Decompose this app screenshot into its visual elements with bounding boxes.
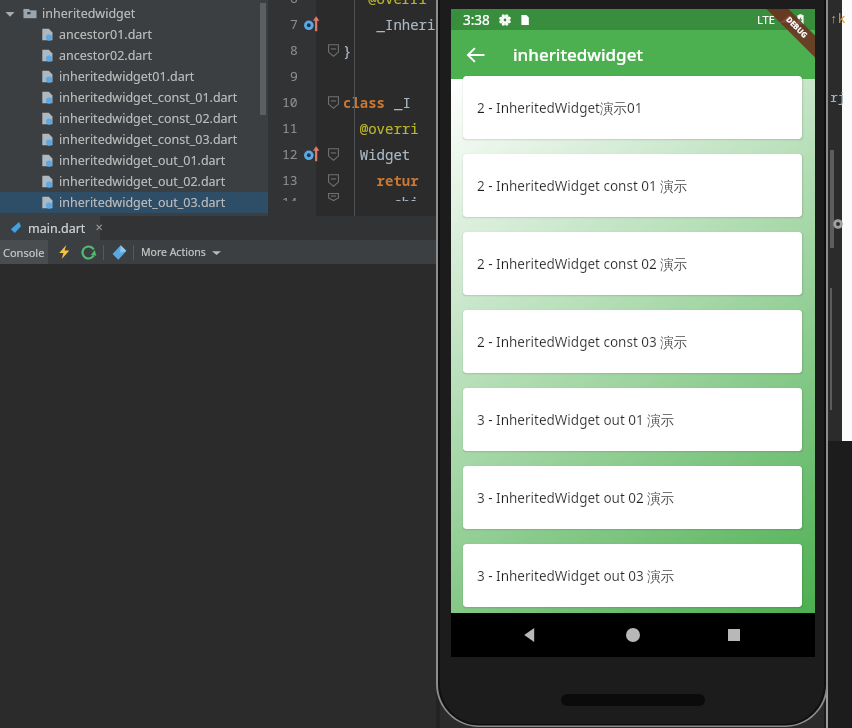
button[interactable]: 3 - InheritedWidget out 03 演示 xyxy=(463,544,802,607)
staticText: 2 - InheritedWidget演示01 xyxy=(477,99,643,117)
staticText: 6 xyxy=(290,0,298,7)
staticText: inheritedwidget_const_01.dart xyxy=(59,89,238,106)
button[interactable]: inheritedwidget xyxy=(0,3,268,24)
staticText: 2 - InheritedWidget const 02 演示 xyxy=(477,255,688,273)
staticText: 14 xyxy=(282,193,298,201)
button[interactable]: inheritedwidget_out_03.dart xyxy=(0,192,268,213)
button[interactable]: Back xyxy=(508,613,552,657)
button[interactable]: 2 - InheritedWidget演示01 xyxy=(463,76,802,139)
staticText: @overri xyxy=(343,0,427,8)
staticText: 3 - InheritedWidget out 03 演示 xyxy=(477,567,675,585)
staticText: ancestor02.dart xyxy=(59,47,153,64)
staticText: retur xyxy=(343,171,419,190)
button[interactable]: 3 - InheritedWidget out 02 演示 xyxy=(463,466,802,529)
staticText: _Inheri xyxy=(343,15,436,34)
staticText: @overri xyxy=(343,119,419,138)
staticText: 12 xyxy=(282,145,298,163)
button[interactable]: inheritedwidget_const_01.dart xyxy=(0,87,268,108)
staticText: inheritedwidget xyxy=(513,43,643,66)
staticText: 9 xyxy=(290,67,298,85)
staticText: 11 xyxy=(282,119,298,137)
button[interactable]: Console xyxy=(0,240,48,264)
button[interactable]: inheritedwidget_const_02.dart xyxy=(0,108,268,129)
staticText: inheritedwidget_out_03.dart xyxy=(59,194,226,211)
button[interactable]: inheritedwidget_const_03.dart xyxy=(0,129,268,150)
staticText: 2 - InheritedWidget const 01 演示 xyxy=(477,177,688,195)
staticText: chi xyxy=(343,193,419,201)
button[interactable]: ancestor02.dart xyxy=(0,45,268,66)
staticText: _I xyxy=(394,93,411,112)
button[interactable]: 2 - InheritedWidget const 01 演示 xyxy=(463,154,802,217)
button[interactable]: 2 - InheritedWidget const 03 演示 xyxy=(463,310,802,373)
staticText: inheritedwidget_out_01.dart xyxy=(59,152,226,169)
staticText: 3 - InheritedWidget out 01 演示 xyxy=(477,411,675,429)
staticText: 7 xyxy=(290,15,298,33)
button[interactable]: inheritedwidget_out_02.dart xyxy=(0,171,268,192)
staticText: inheritedwidget_const_03.dart xyxy=(59,131,238,148)
staticText: Console xyxy=(3,245,45,260)
button[interactable]: Open DevTools xyxy=(109,242,129,262)
staticText: DEBUG xyxy=(784,14,810,40)
staticText: 3:38 xyxy=(463,11,490,29)
button[interactable]: Home xyxy=(611,613,655,657)
staticText: inheritedwidget_const_02.dart xyxy=(59,110,238,127)
staticText: 8 xyxy=(290,41,298,59)
staticText: class xyxy=(343,93,394,112)
staticText: LTE xyxy=(757,12,775,27)
button[interactable]: Back xyxy=(454,33,498,77)
button[interactable]: ancestor01.dart xyxy=(0,24,268,45)
staticText: inheritedwidget_out_02.dart xyxy=(59,173,226,190)
staticText: 3 - InheritedWidget out 02 演示 xyxy=(477,489,675,507)
staticText: More Actions xyxy=(141,245,206,259)
staticText: ancestor01.dart xyxy=(59,26,153,43)
button[interactable]: inheritedwidget_out_01.dart xyxy=(0,150,268,171)
button[interactable]: inheritedwidget01.dart xyxy=(0,66,268,87)
button[interactable]: 3 - InheritedWidget out 01 演示 xyxy=(463,388,802,451)
staticText: ✕ xyxy=(95,222,104,234)
staticText: rj xyxy=(830,88,846,106)
staticText: 2 - InheritedWidget const 03 演示 xyxy=(477,333,688,351)
button[interactable]: Settings xyxy=(832,218,844,230)
staticText: ↑k xyxy=(830,9,846,27)
button[interactable]: Hot reload xyxy=(54,242,74,262)
staticText: main.dart xyxy=(28,220,86,237)
staticText: } xyxy=(343,41,352,60)
button[interactable]: 2 - InheritedWidget const 02 演示 xyxy=(463,232,802,295)
staticText: Widget xyxy=(343,145,411,164)
staticText: 10 xyxy=(282,93,298,111)
staticText: inheritedwidget xyxy=(42,5,136,22)
button[interactable]: Recents xyxy=(712,613,756,657)
button[interactable]: Hot restart xyxy=(78,242,98,262)
staticText: inheritedwidget01.dart xyxy=(59,68,195,85)
staticText: 13 xyxy=(282,171,298,189)
button[interactable]: More Actions xyxy=(141,240,221,264)
